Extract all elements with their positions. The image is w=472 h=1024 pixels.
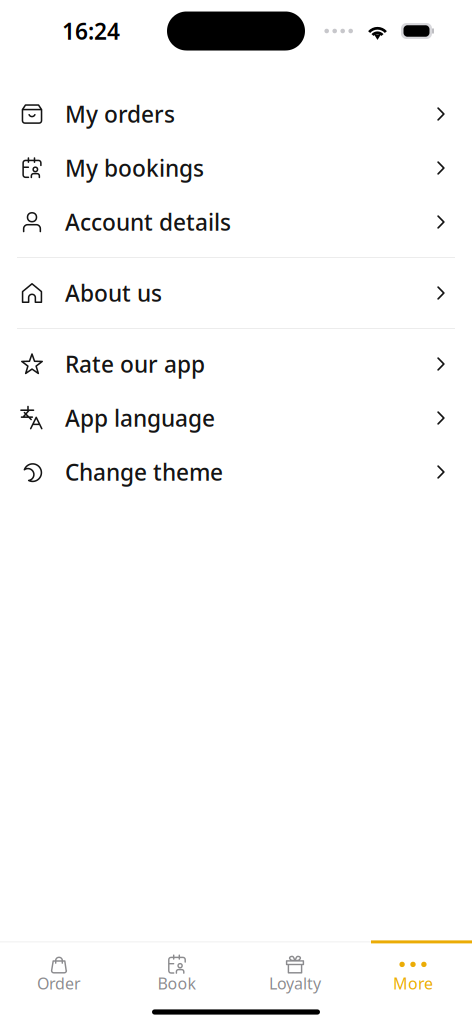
button[interactable]: Change theme xyxy=(0,445,472,499)
button[interactable]: More xyxy=(354,953,472,991)
staticText: Account details xyxy=(65,207,231,237)
staticText: App language xyxy=(65,403,215,433)
button[interactable]: Book xyxy=(118,953,236,991)
button[interactable]: My bookings xyxy=(0,141,472,195)
button[interactable]: About us xyxy=(0,266,472,320)
button[interactable]: Account details xyxy=(0,195,472,249)
staticText: Loyalty xyxy=(269,973,321,994)
staticText: Rate our app xyxy=(65,349,205,379)
staticText: Change theme xyxy=(65,457,223,487)
button[interactable]: App language xyxy=(0,391,472,445)
button[interactable]: My orders xyxy=(0,87,472,141)
button[interactable]: Rate our app xyxy=(0,337,472,391)
button[interactable]: Order xyxy=(0,953,118,991)
staticText: Order xyxy=(37,973,81,994)
staticText: My orders xyxy=(65,99,175,129)
staticText: 16:24 xyxy=(62,16,120,46)
staticText: My bookings xyxy=(65,153,204,183)
staticText: More xyxy=(393,973,433,994)
staticText: Book xyxy=(157,973,196,994)
staticText: About us xyxy=(65,278,162,308)
button[interactable]: Loyalty xyxy=(236,953,354,991)
